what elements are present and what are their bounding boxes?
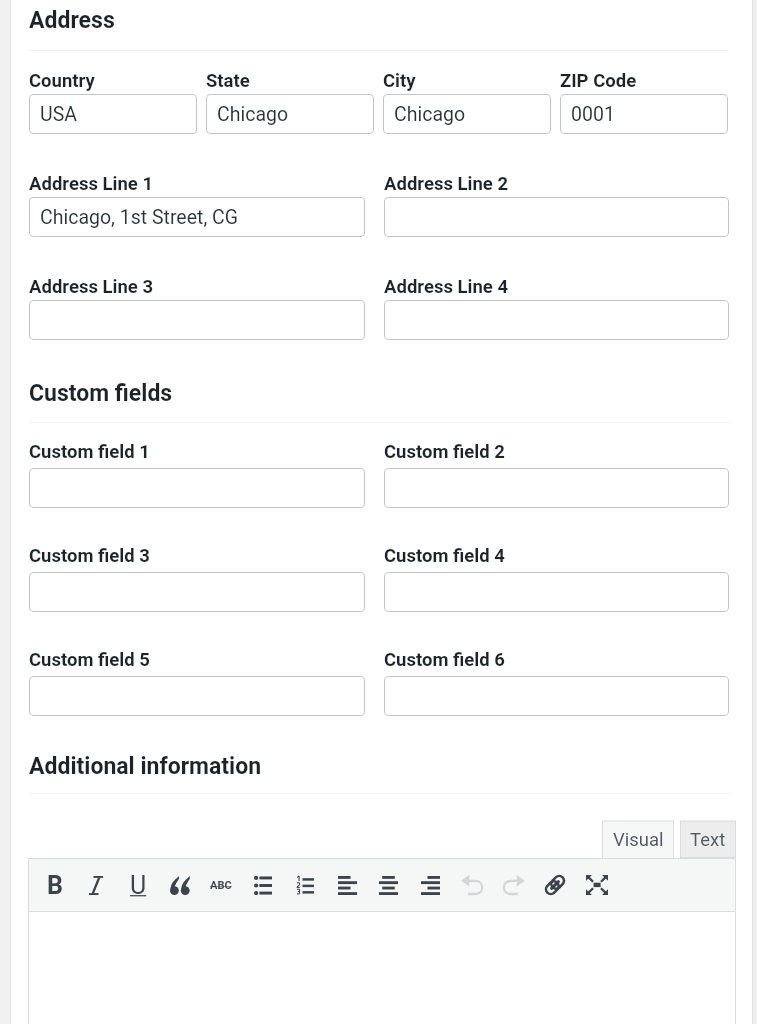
staticText: ZIP Code [560, 70, 637, 92]
button[interactable] [28, 911, 736, 1024]
button[interactable]: Underline [117, 858, 159, 912]
staticText: B [47, 871, 63, 900]
staticText: Address Line 2 [384, 173, 509, 195]
button[interactable]: Visual [602, 821, 674, 858]
staticText: Address Line 3 [29, 276, 154, 298]
staticText: Address Line 1 [29, 173, 154, 195]
staticText: Custom field 3 [29, 545, 150, 567]
button[interactable] [384, 468, 729, 508]
staticText: Chicago, 1st Street, CG [40, 206, 239, 229]
button[interactable]: Align center [367, 858, 409, 912]
button[interactable]: Chicago [206, 94, 374, 134]
button[interactable]: Strikethrough [200, 858, 242, 912]
staticText: Address Line 4 [384, 276, 509, 298]
button[interactable]: Text [680, 821, 736, 858]
staticText: Additional information [29, 753, 262, 780]
staticText: USA [40, 103, 77, 126]
staticText: Custom field 5 [29, 649, 150, 671]
button[interactable]: 0001 [560, 94, 728, 134]
staticText: State [206, 70, 250, 92]
button[interactable]: Insert link [534, 858, 576, 912]
staticText: Custom field 2 [384, 441, 505, 463]
staticText: ABC [210, 879, 232, 892]
button[interactable]: Redo [492, 858, 534, 912]
button[interactable] [29, 300, 365, 340]
button[interactable] [29, 572, 365, 612]
button[interactable]: Blockquote [159, 858, 201, 912]
button[interactable]: Align right [409, 858, 451, 912]
button[interactable]: Chicago [383, 94, 551, 134]
button[interactable] [384, 572, 729, 612]
button[interactable] [29, 468, 365, 508]
button[interactable]: Numbered list [284, 858, 326, 912]
staticText: Custom field 6 [384, 649, 505, 671]
button[interactable]: Italic [75, 858, 117, 912]
button[interactable]: Bulleted list [242, 858, 284, 912]
staticText: Address [29, 7, 115, 34]
staticText: Text [690, 829, 726, 851]
staticText: Custom fields [29, 380, 173, 407]
staticText: Visual [613, 829, 664, 851]
button[interactable]: Undo [451, 858, 493, 912]
button[interactable]: USA [29, 94, 197, 134]
staticText: City [383, 70, 416, 92]
button[interactable] [384, 300, 729, 340]
button[interactable] [384, 676, 729, 716]
button[interactable]: Align left [326, 858, 368, 912]
staticText: U [130, 871, 147, 900]
button[interactable] [384, 197, 729, 237]
staticText: Custom field 1 [29, 441, 150, 463]
button[interactable]: Chicago, 1st Street, CG [29, 197, 365, 237]
staticText: Chicago [394, 103, 466, 126]
staticText: Custom field 4 [384, 545, 505, 567]
button[interactable] [29, 676, 365, 716]
button[interactable]: Bold [34, 858, 76, 912]
staticText: Chicago [217, 103, 289, 126]
staticText: 0001 [571, 103, 615, 126]
button[interactable]: Fullscreen [576, 858, 618, 912]
staticText: Country [29, 70, 95, 92]
